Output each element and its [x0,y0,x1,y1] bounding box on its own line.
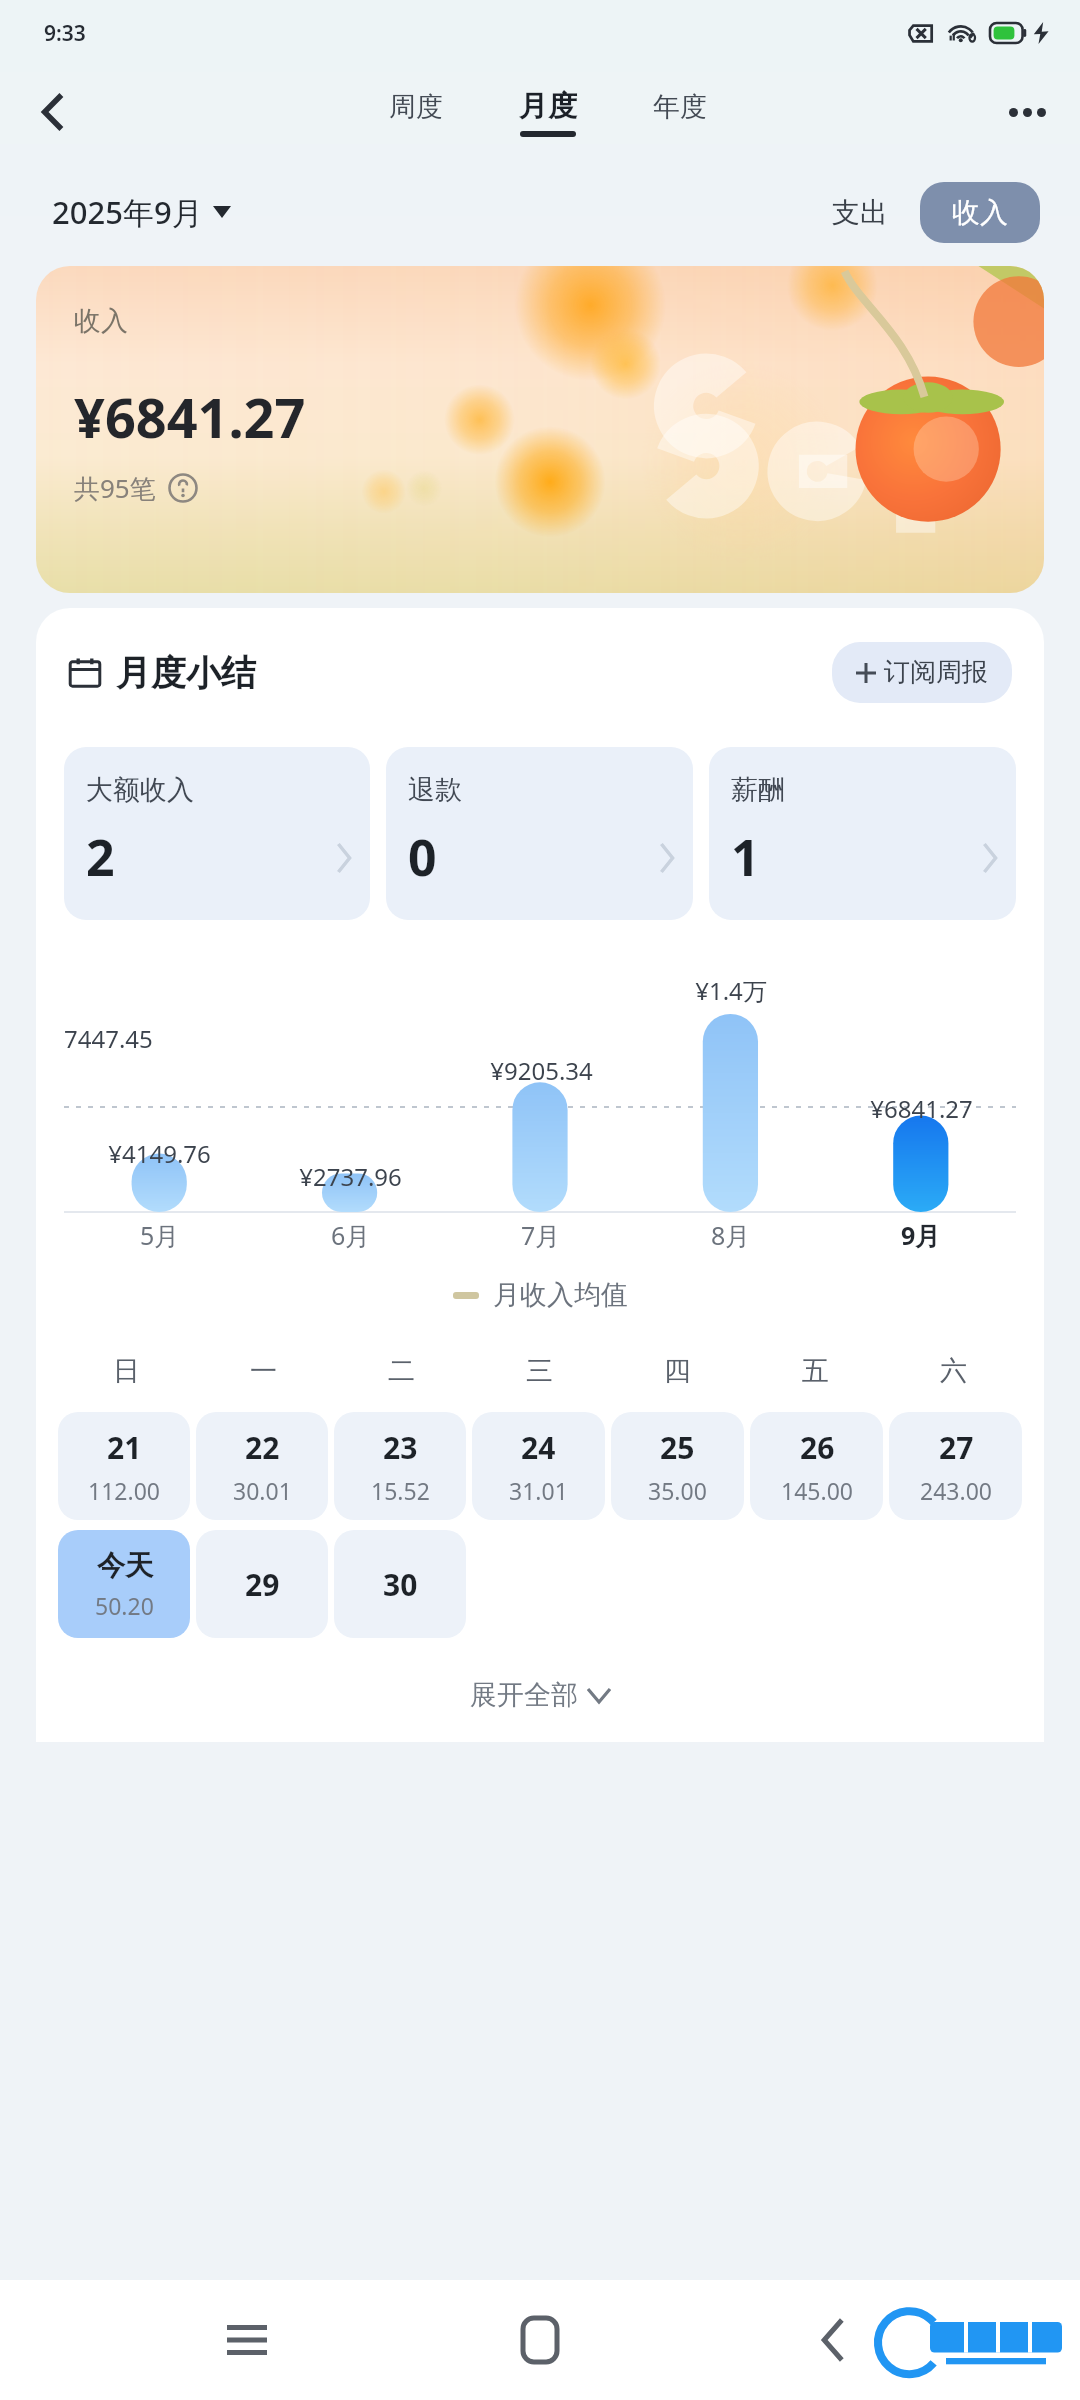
button[interactable]: 退款 [386,747,693,920]
staticText: 9:33 [44,19,86,48]
staticText: ¥4149.76 [108,1137,211,1170]
staticText: 7月 [521,1218,561,1252]
button[interactable]: More options [996,81,1058,143]
button[interactable]: 21 [58,1412,190,1520]
staticText: 收入 [952,195,1008,230]
staticText: 30.01 [233,1475,292,1506]
button[interactable]: 30 [334,1530,466,1638]
staticText: 日 [113,1354,140,1388]
staticText: 24 [521,1427,556,1468]
staticText: 2 [86,823,115,891]
staticText: 四 [664,1354,691,1388]
staticText: 6月 [331,1218,371,1252]
button[interactable]: 大额收入 [64,747,370,920]
staticText: 26 [800,1427,835,1468]
button[interactable]: 订阅周报 [832,642,1012,703]
staticText: 共95笔 [74,470,156,506]
staticText: 243.00 [920,1475,992,1506]
button[interactable]: 2025年9月 [52,191,231,233]
button[interactable]: Home [494,2294,586,2386]
button[interactable]: 25 [611,1412,744,1520]
button[interactable]: 月度 [513,84,583,141]
staticText: ¥1.4万 [695,974,767,1007]
staticText: 退款 [408,773,462,807]
staticText: 月收入均值 [493,1278,628,1312]
button[interactable]: Info [168,473,198,503]
staticText: 月度 [519,88,577,125]
button[interactable]: 22 [196,1412,328,1520]
staticText: 23 [383,1427,418,1468]
staticText: 145.00 [781,1475,853,1506]
staticText: 六 [940,1354,967,1388]
button[interactable]: 周度 [383,86,449,140]
staticText: 30 [383,1564,418,1605]
staticText: 31.01 [509,1475,568,1506]
staticText: ¥2737.96 [299,1160,402,1193]
staticText: 112.00 [88,1475,160,1506]
button[interactable]: 29 [196,1530,328,1638]
staticText: 月度小结 [116,651,256,695]
button[interactable]: Back [787,2294,879,2386]
staticText: 15.52 [371,1475,430,1506]
staticText: 21 [107,1427,142,1468]
button[interactable]: 收入 [920,182,1040,243]
button[interactable]: 支出 [810,183,910,242]
staticText: 薪酬 [731,773,785,807]
button[interactable]: 今天 [58,1530,190,1638]
staticText: 29 [245,1564,280,1605]
staticText: 9月 [901,1218,941,1252]
button[interactable]: 26 [750,1412,883,1520]
button[interactable]: Back [22,81,84,143]
staticText: 年度 [653,90,707,124]
staticText: 27 [939,1427,974,1468]
staticText: ¥9205.34 [490,1054,593,1087]
staticText: 35.00 [648,1475,707,1506]
staticText: 订阅周报 [884,656,988,689]
staticText: 25 [660,1427,695,1468]
button[interactable]: 展开全部 [36,1666,1044,1724]
staticText: 2025年9月 [52,191,203,233]
staticText: 1 [731,823,760,891]
button[interactable]: 24 [472,1412,605,1520]
staticText: 二 [388,1354,415,1388]
button[interactable]: 23 [334,1412,466,1520]
staticText: 0 [408,823,437,891]
staticText: 三 [526,1354,553,1388]
button[interactable]: Recent apps [201,2294,293,2386]
staticText: ¥6841.27 [870,1092,973,1125]
staticText: 周度 [389,90,443,124]
button[interactable]: 薪酬 [709,747,1016,920]
staticText: 50.20 [95,1590,154,1621]
staticText: 22 [245,1427,280,1468]
button[interactable]: 27 [889,1412,1022,1520]
staticText: 今天 [97,1548,153,1583]
staticText: 大额收入 [86,773,194,807]
button[interactable]: 收入 [36,266,1044,593]
staticText: 5月 [140,1218,180,1252]
button[interactable]: 年度 [647,86,713,140]
staticText: ¥6841.27 [74,380,306,454]
staticText: 展开全部 [470,1678,578,1712]
staticText: 五 [802,1354,829,1388]
staticText: 8月 [711,1218,751,1252]
staticText: 一 [250,1354,277,1388]
staticText: 支出 [832,195,888,230]
staticText: 7447.45 [64,1022,153,1055]
staticText: 收入 [74,304,128,338]
